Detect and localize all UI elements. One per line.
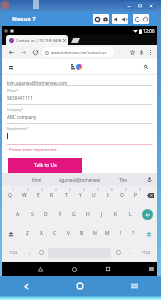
staticText: Contact us | TO THE NEW xyxy=(16,38,62,43)
staticText: 3 xyxy=(41,188,43,192)
button[interactable]: 7 xyxy=(87,186,101,205)
button[interactable]: ! xyxy=(114,224,127,243)
button[interactable]: Close xyxy=(146,2,156,9)
button[interactable]: Kimi xyxy=(16,173,58,186)
button[interactable]: New tab xyxy=(71,38,80,43)
button[interactable]: Talk to Us xyxy=(8,158,82,173)
button[interactable]: Enter xyxy=(142,209,153,220)
button[interactable]: Z xyxy=(20,224,34,243)
button[interactable]: 8 xyxy=(101,186,115,205)
button[interactable]: Bookmark xyxy=(128,45,137,59)
staticText: Requirement* xyxy=(7,127,29,131)
button[interactable]: K xyxy=(109,205,123,224)
button[interactable]: L xyxy=(123,205,137,224)
staticText: Talk to Us xyxy=(34,162,57,169)
button[interactable]: B xyxy=(75,224,88,243)
button[interactable]: ?123 xyxy=(2,243,24,262)
button[interactable]: H xyxy=(81,205,95,224)
button[interactable]: 5 xyxy=(59,186,73,205)
button[interactable]: rotr xyxy=(141,14,149,24)
staticText: J xyxy=(101,211,103,218)
button[interactable]: S xyxy=(25,205,39,224)
button[interactable]: Menu xyxy=(107,276,161,296)
staticText: ?123 xyxy=(142,250,151,255)
button[interactable]: J xyxy=(95,205,109,224)
button[interactable]: ? xyxy=(127,224,140,243)
button[interactable]: C xyxy=(48,224,62,243)
button[interactable]: 2 xyxy=(17,186,31,205)
button[interactable]: Menu xyxy=(146,45,155,59)
button[interactable]: voldn xyxy=(112,14,120,24)
button[interactable]: gear xyxy=(93,14,101,24)
staticText: 9650441111 xyxy=(7,95,33,101)
button[interactable]: V xyxy=(62,224,75,243)
button[interactable]: Back xyxy=(6,45,17,59)
button[interactable]: Recents xyxy=(91,262,125,276)
button[interactable]: Home xyxy=(53,276,107,296)
staticText: 5 xyxy=(69,188,71,192)
staticText: 8 xyxy=(111,188,113,192)
staticText: V xyxy=(67,230,71,237)
button[interactable]: D xyxy=(39,205,53,224)
button[interactable]: Minimize xyxy=(124,2,134,9)
button[interactable]: , xyxy=(24,243,35,262)
button[interactable]: A xyxy=(11,205,25,224)
staticText: , xyxy=(29,249,31,256)
button[interactable]: cam xyxy=(101,14,109,24)
button[interactable]: 6 xyxy=(73,186,87,205)
button[interactable]: 3 xyxy=(31,186,45,205)
staticText: ? xyxy=(132,230,135,237)
button[interactable]: Settings xyxy=(112,243,124,262)
button[interactable]: agarwal@tothenew xyxy=(58,173,101,186)
staticText: C xyxy=(53,230,57,237)
button[interactable]: Shift xyxy=(2,224,20,243)
button[interactable]: Contact us | TO THE NEW xyxy=(6,35,68,45)
button[interactable]: Back xyxy=(23,262,57,276)
button[interactable]: Voice search xyxy=(137,45,146,59)
staticText: D xyxy=(44,211,48,218)
button[interactable]: Reload xyxy=(29,45,41,59)
staticText: O xyxy=(120,192,124,199)
button[interactable]: Home xyxy=(57,262,91,276)
button[interactable]: M xyxy=(101,224,114,243)
button[interactable]: Restore xyxy=(135,2,145,9)
staticText: 0 xyxy=(139,188,141,192)
button[interactable]: Backspace xyxy=(143,186,157,205)
button[interactable]: 9 xyxy=(115,186,129,205)
button[interactable]: 4 xyxy=(45,186,59,205)
staticText: F xyxy=(59,211,62,218)
staticText: agarwal@tothenew xyxy=(59,177,100,183)
button[interactable]: N xyxy=(88,224,101,243)
staticText: ABC company xyxy=(7,114,37,120)
staticText: ?123 xyxy=(9,250,18,255)
button[interactable]: rotl xyxy=(133,14,141,24)
button[interactable]: X xyxy=(34,224,48,243)
button[interactable]: 1 xyxy=(2,186,17,205)
staticText: 1 xyxy=(13,188,15,192)
staticText: S xyxy=(31,211,34,218)
button[interactable]: ?123 xyxy=(135,243,157,262)
button[interactable]: www.tothenew.com/contact-us xyxy=(42,47,114,57)
staticText: 6 xyxy=(83,188,85,192)
button[interactable]: G xyxy=(67,205,81,224)
button[interactable]: Shift xyxy=(140,224,157,243)
staticText: Company* xyxy=(7,108,24,112)
button[interactable]: Forward xyxy=(17,45,29,59)
button[interactable]: volup xyxy=(120,14,128,24)
button[interactable]: 0 xyxy=(129,186,143,205)
button[interactable]: Emoji xyxy=(35,243,47,262)
staticText: Phone* xyxy=(7,89,19,93)
button[interactable]: Search xyxy=(142,63,150,71)
staticText: 4 xyxy=(55,188,57,192)
button[interactable]: . xyxy=(124,243,135,262)
button[interactable]: The xyxy=(101,173,144,186)
button[interactable]: F xyxy=(53,205,67,224)
button[interactable]: Close tab xyxy=(61,37,67,43)
staticText: 7 xyxy=(97,188,99,192)
button[interactable]: Hide keyboard xyxy=(145,262,157,276)
staticText: Please enter requirement xyxy=(9,147,57,152)
button[interactable]: Voice input xyxy=(144,173,155,186)
button[interactable]: Back xyxy=(0,276,53,296)
button[interactable]: Open menu xyxy=(7,63,15,71)
